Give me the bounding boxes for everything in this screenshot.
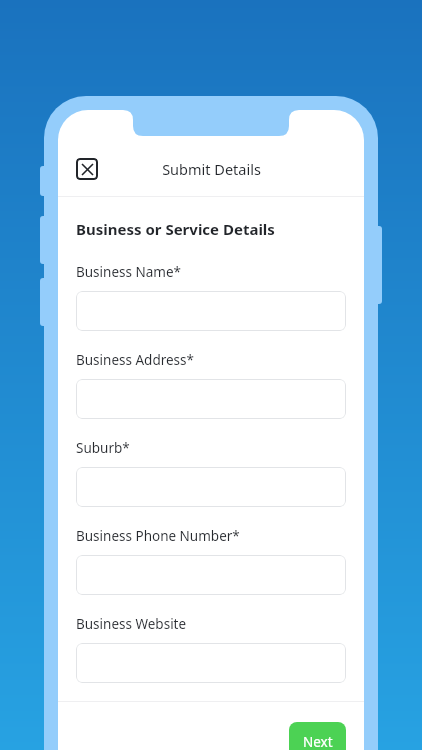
- button[interactable]: [76, 291, 346, 331]
- staticText: Submit Details: [162, 159, 261, 179]
- button[interactable]: [76, 467, 346, 507]
- button[interactable]: Close: [76, 158, 98, 180]
- staticText: Suburb*: [76, 439, 130, 457]
- staticText: Next: [303, 733, 333, 750]
- staticText: Business Phone Number*: [76, 527, 240, 545]
- staticText: Business Name*: [76, 263, 181, 281]
- staticText: Business Website: [76, 615, 187, 633]
- button[interactable]: [76, 643, 346, 683]
- button[interactable]: Next: [289, 722, 346, 750]
- staticText: Business Address*: [76, 351, 194, 369]
- button[interactable]: [76, 379, 346, 419]
- button[interactable]: [76, 555, 346, 595]
- staticText: Business or Service Details: [76, 219, 275, 239]
